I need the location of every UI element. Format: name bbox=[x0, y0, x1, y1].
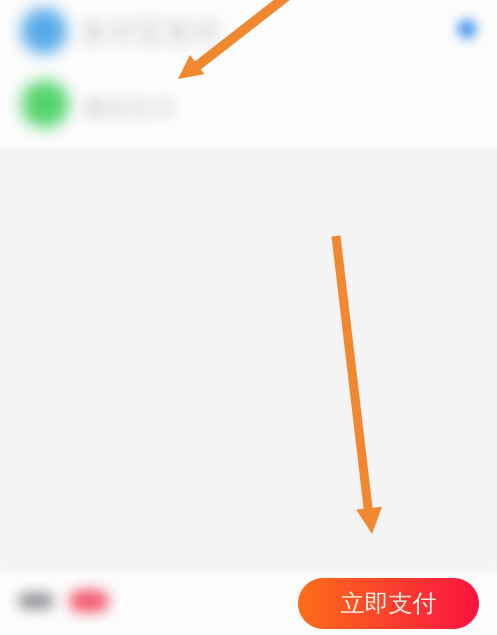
staticText: 立即支付 bbox=[340, 589, 436, 618]
button[interactable]: 微信支付 bbox=[0, 74, 497, 149]
button[interactable]: 立即支付 bbox=[298, 578, 479, 629]
button[interactable]: 支付宝支付 bbox=[0, 0, 497, 74]
